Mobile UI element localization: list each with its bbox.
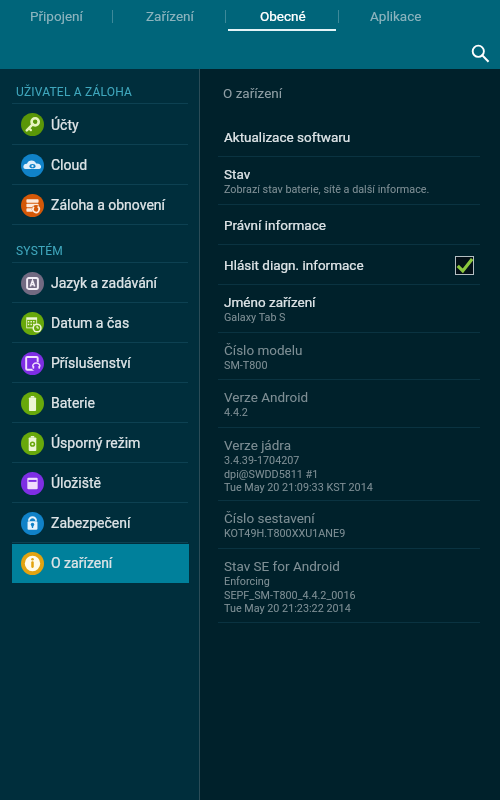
staticText: Zařízení	[146, 8, 194, 24]
staticText: Příslušenství	[51, 355, 131, 371]
staticText: Připojení	[30, 8, 83, 24]
staticText: O zařízení	[223, 85, 283, 101]
button[interactable]: Search	[466, 39, 494, 67]
staticText: Hlásit diagn. informace	[224, 257, 364, 273]
staticText: Galaxy Tab S	[224, 311, 286, 324]
staticText: Stav SE for Android	[224, 558, 340, 574]
staticText: Enforcing SEPF_SM-T800_4.4.2_0016 Tue Ma…	[224, 575, 356, 614]
staticText: SYSTÉM	[16, 244, 64, 258]
staticText: Verze Android	[224, 389, 309, 405]
button[interactable]: Záloha a obnovení	[0, 185, 199, 225]
staticText: Číslo sestavení	[224, 510, 315, 526]
staticText: Datum a čas	[51, 315, 130, 331]
button[interactable]: Verze Android	[200, 380, 500, 428]
button[interactable]: Jazyk a zadávání	[0, 263, 199, 303]
staticText: Aktualizace softwaru	[224, 129, 351, 145]
button[interactable]: Zabezpečení	[0, 503, 199, 543]
staticText: Účty	[51, 117, 79, 133]
button[interactable]: O zařízení	[0, 543, 199, 583]
staticText: Jméno zařízení	[224, 294, 316, 310]
staticText: Baterie	[51, 395, 95, 411]
button[interactable]: Aplikace	[339, 0, 452, 32]
button[interactable]: Úsporný režim	[0, 423, 199, 463]
staticText: Právní informace	[224, 217, 326, 233]
staticText: Cloud	[51, 157, 88, 173]
button[interactable]: Číslo sestavení	[200, 501, 500, 549]
staticText: Číslo modelu	[224, 342, 303, 358]
staticText: O zařízení	[51, 555, 113, 571]
button[interactable]: Účty	[0, 104, 199, 145]
button[interactable]: Číslo modelu	[200, 333, 500, 380]
staticText: Úložiště	[51, 475, 101, 491]
staticText: Obecné	[260, 8, 306, 24]
staticText: UŽIVATEL A ZÁLOHA	[16, 85, 133, 99]
staticText: SM-T800	[224, 359, 268, 372]
staticText: Úsporný režim	[51, 435, 141, 451]
button[interactable]: Stav	[200, 157, 500, 205]
staticText: 4.4.2	[224, 406, 248, 419]
button[interactable]: Obecné	[226, 0, 339, 32]
staticText: Stav	[224, 166, 251, 182]
button[interactable]: Právní informace	[200, 205, 500, 245]
button[interactable]: Hlásit diagn. informace	[200, 245, 500, 285]
staticText: Zabezpečení	[51, 515, 131, 531]
button[interactable]: Úložiště	[0, 463, 199, 503]
button[interactable]: Datum a čas	[0, 303, 199, 343]
button[interactable]: Baterie	[0, 383, 199, 423]
staticText: Aplikace	[370, 8, 422, 24]
staticText: Verze jádra	[224, 437, 291, 453]
button[interactable]: Aktualizace softwaru	[200, 117, 500, 157]
button[interactable]: Jméno zařízení	[200, 285, 500, 333]
button[interactable]: Připojení	[0, 0, 113, 32]
staticText: Zobrazí stav baterie, sítě a další infor…	[224, 183, 430, 196]
staticText: 3.4.39-1704207 dpi@SWDD5811 #1 Tue May 2…	[224, 454, 373, 493]
button[interactable]: Verze jádra	[200, 428, 500, 501]
button[interactable]: Cloud	[0, 145, 199, 185]
button[interactable]: Stav SE for Android	[200, 549, 500, 623]
staticText: Záloha a obnovení	[51, 197, 166, 213]
button[interactable]: Příslušenství	[0, 343, 199, 383]
staticText: KOT49H.T800XXU1ANE9	[224, 527, 346, 540]
button[interactable]: Zařízení	[113, 0, 226, 32]
staticText: Jazyk a zadávání	[51, 275, 158, 291]
